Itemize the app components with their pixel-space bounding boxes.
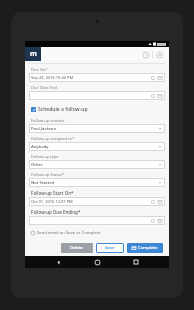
button[interactable] [29,91,165,100]
button[interactable]: Back [52,256,64,268]
staticText: Follow-up assigned to* [31,136,75,141]
staticText: Follow-up Due Ending* [31,209,81,215]
button[interactable]: Paul Jackson [29,124,165,133]
staticText: Send email on Save or Complete [37,230,101,236]
staticText: Follow-up Start On* [31,190,74,196]
button[interactable]: Home [91,256,103,268]
button[interactable]: Anybody [29,142,165,151]
staticText: Not Started [31,180,158,186]
staticText: Follow-up contact [31,118,65,123]
button[interactable]: Home [25,47,41,61]
button[interactable]: Recent apps [130,256,142,268]
button[interactable]: Save [96,243,124,253]
staticText: Schedule a follow-up [38,106,88,113]
staticText: Anybody [31,144,158,150]
staticText: Due Date End [31,85,57,90]
staticText: Complete [138,245,158,251]
button[interactable]: Settings [153,48,166,61]
button[interactable] [29,216,165,225]
button[interactable]: Send email on Save or Complete [29,229,165,237]
staticText: Other [31,162,158,168]
button[interactable]: Oct 01, 2016 12:07 PM [29,197,165,206]
button[interactable]: Schedule a follow-up [29,105,165,114]
staticText: Save [105,245,115,251]
button[interactable]: Sep 24, 2016 10:40 PM [29,73,165,82]
button[interactable]: Delete [61,243,93,253]
staticText: Follow-up Status* [31,172,65,177]
button[interactable]: Other [29,160,165,169]
button[interactable]: History [139,48,152,61]
staticText: Paul Jackson [31,126,158,132]
staticText: Oct 01, 2016 12:07 PM [31,199,151,204]
staticText: Sep 24, 2016 10:40 PM [31,75,151,80]
button[interactable]: Not Started [29,178,165,187]
staticText: m [30,49,37,59]
staticText: Delete [70,245,84,251]
button[interactable]: Complete [127,243,163,253]
staticText: Follow-up type [31,154,59,159]
staticText: Due On* [31,67,48,72]
